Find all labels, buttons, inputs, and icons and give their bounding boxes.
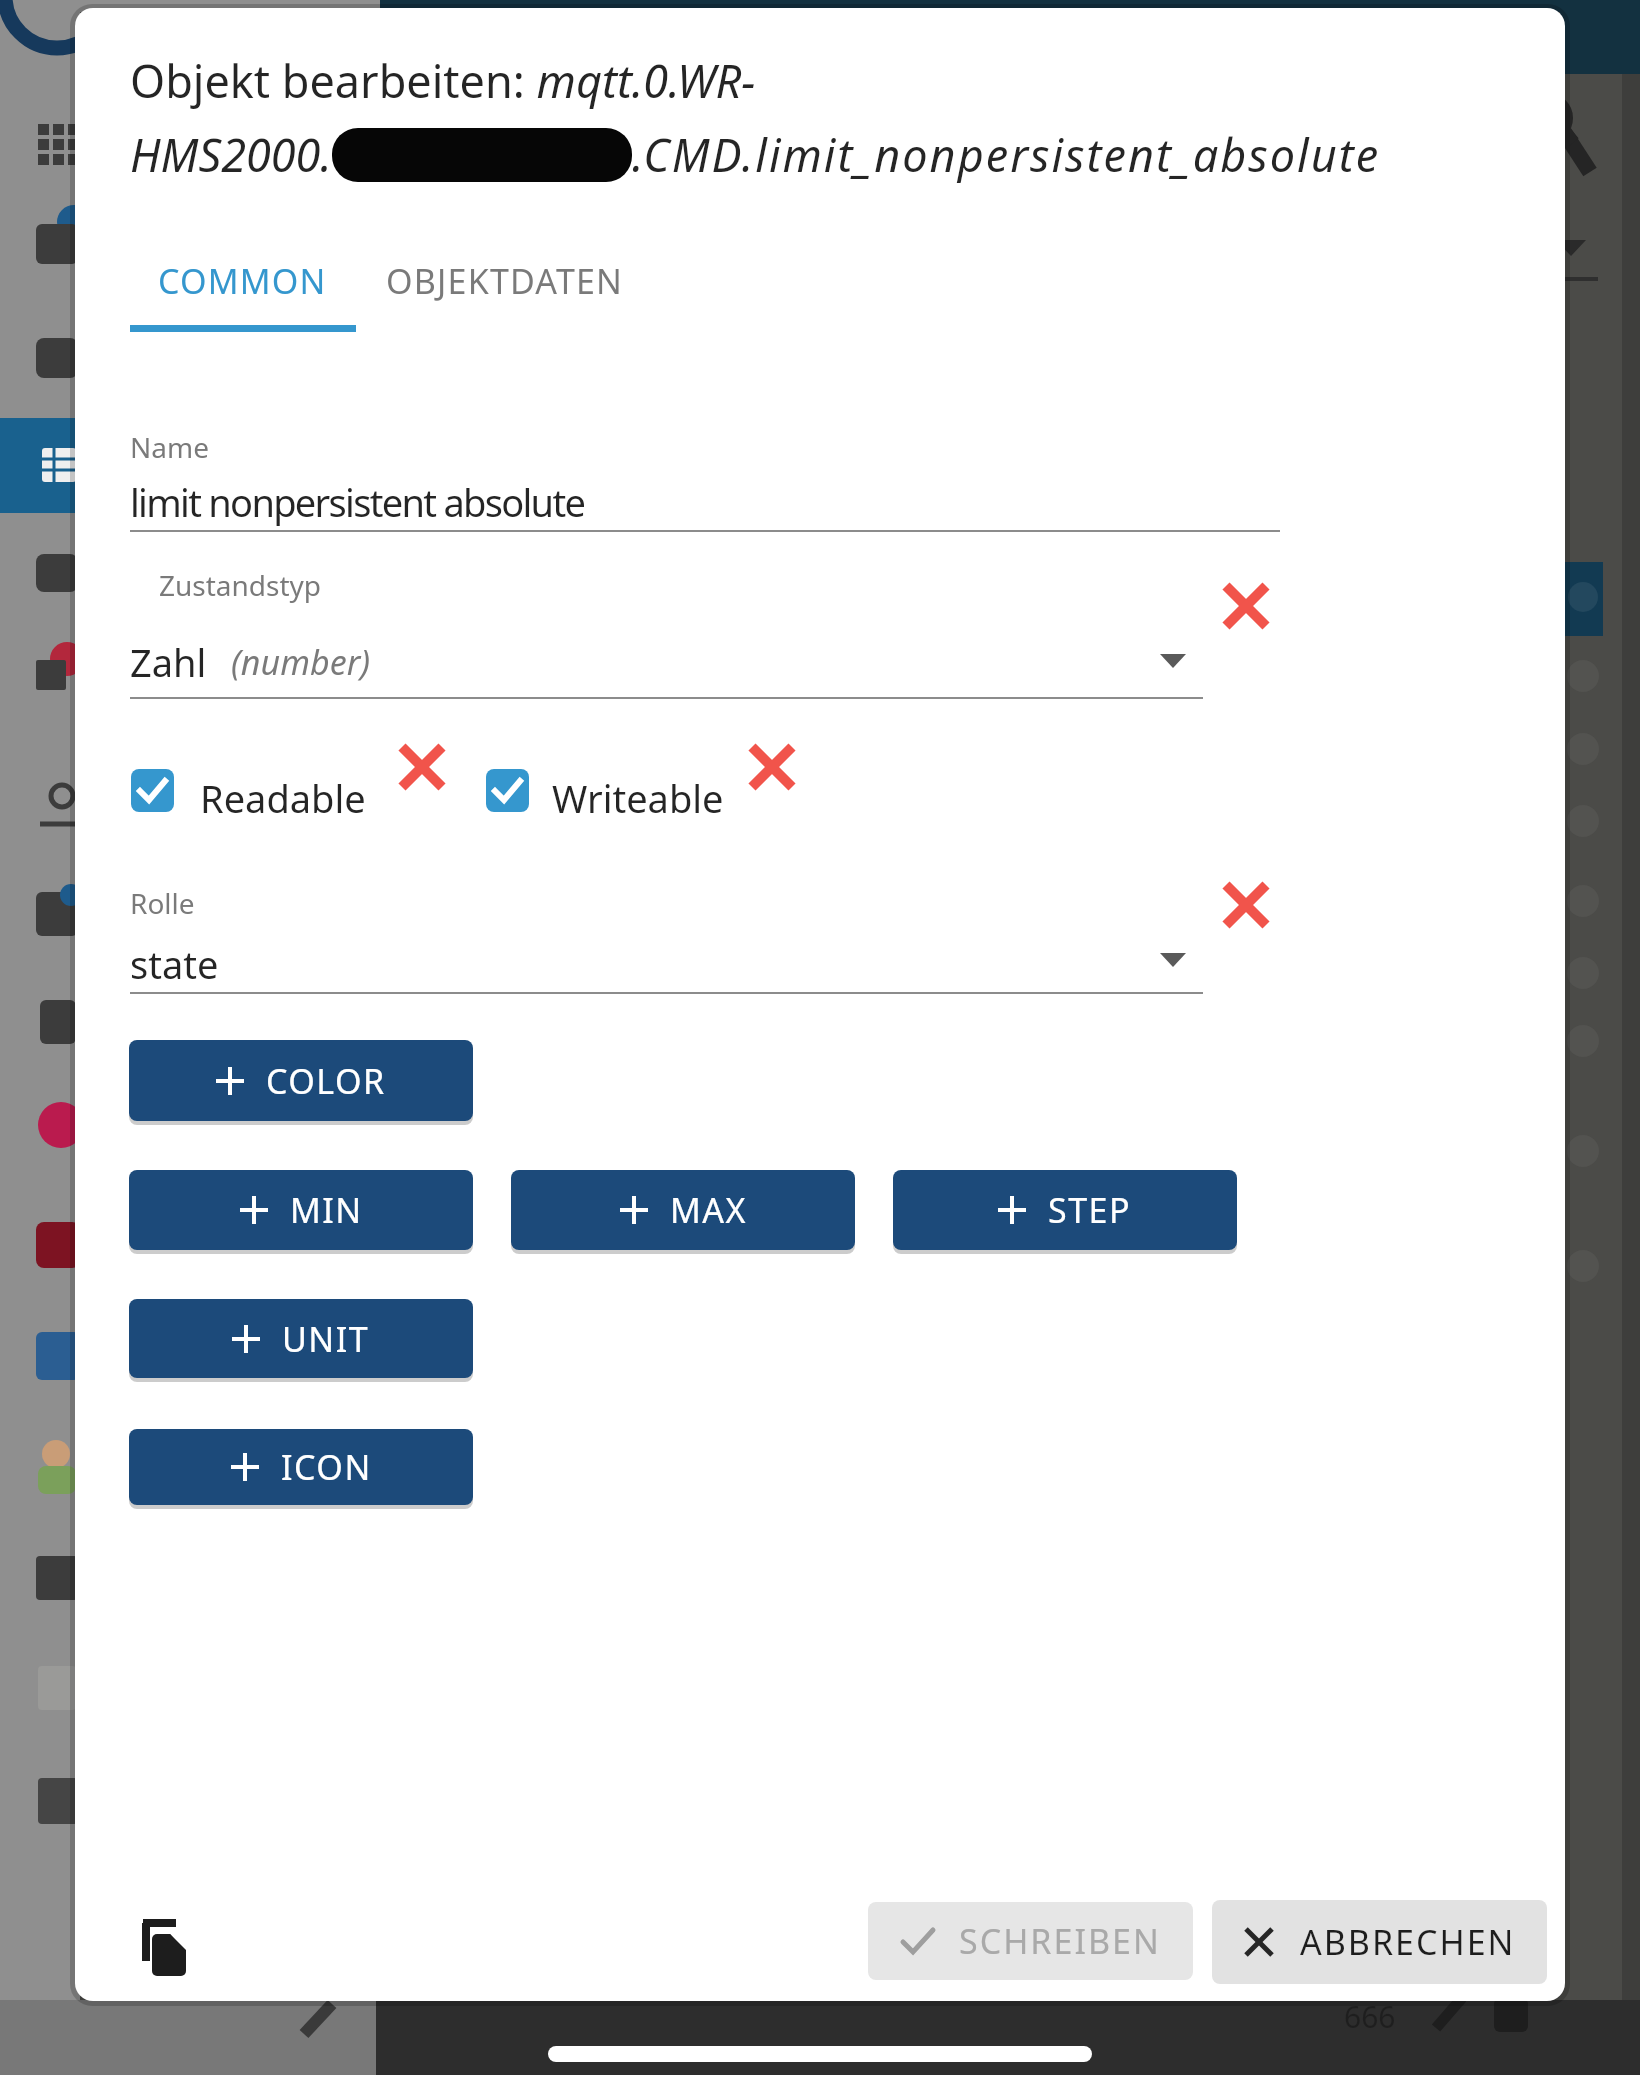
staticText: SCHREIBEN	[959, 1918, 1161, 1964]
button[interactable]	[1216, 875, 1276, 935]
button[interactable]: OBJEKTDATEN	[375, 236, 635, 326]
button[interactable]: MIN	[129, 1170, 473, 1250]
button[interactable]: UNIT	[129, 1299, 473, 1378]
staticText: .CMD.limit_nonpersistent_absolute	[632, 124, 1381, 185]
button[interactable]	[742, 737, 802, 797]
staticText: ABBRECHEN	[1300, 1919, 1516, 1965]
staticText: OBJEKTDATEN	[386, 258, 624, 304]
button[interactable]	[142, 1915, 192, 1977]
staticText: Zustandstyp	[159, 566, 322, 604]
staticText: 666	[1344, 1996, 1396, 2037]
staticText: MIN	[290, 1187, 363, 1233]
button[interactable]	[392, 737, 452, 797]
staticText: Rolle	[130, 884, 195, 922]
button[interactable]	[1216, 576, 1276, 636]
button[interactable]: ICON	[129, 1429, 473, 1505]
staticText: ICON	[281, 1444, 372, 1490]
staticText: COMMON	[158, 258, 327, 304]
staticText: Name	[130, 428, 209, 466]
staticText: MAX	[670, 1187, 747, 1233]
button[interactable]: STEP	[893, 1170, 1237, 1250]
staticText: COLOR	[266, 1058, 386, 1104]
button[interactable]: COMMON	[130, 236, 355, 326]
button[interactable]: state	[130, 938, 219, 990]
button[interactable]	[131, 769, 174, 812]
staticText: Objekt bearbeiten: mqtt.0.WR-	[130, 50, 756, 111]
button[interactable]: COLOR	[129, 1040, 473, 1121]
button[interactable]: Zahl	[130, 636, 371, 688]
staticText: Zahl	[130, 636, 207, 688]
button[interactable]: MAX	[511, 1170, 855, 1250]
staticText: Writeable	[552, 772, 724, 824]
button[interactable]: SCHREIBEN	[868, 1902, 1193, 1980]
staticText: limit nonpersistent absolute	[130, 476, 585, 528]
staticText: state	[130, 938, 219, 990]
staticText: STEP	[1048, 1187, 1132, 1233]
button[interactable]	[486, 769, 529, 812]
staticText: (number)	[231, 639, 371, 685]
staticText: UNIT	[282, 1316, 370, 1362]
button[interactable]: ABBRECHEN	[1212, 1900, 1547, 1984]
staticText: HMS2000.	[130, 124, 332, 185]
staticText: Readable	[200, 772, 366, 824]
button[interactable]	[0, 418, 75, 513]
